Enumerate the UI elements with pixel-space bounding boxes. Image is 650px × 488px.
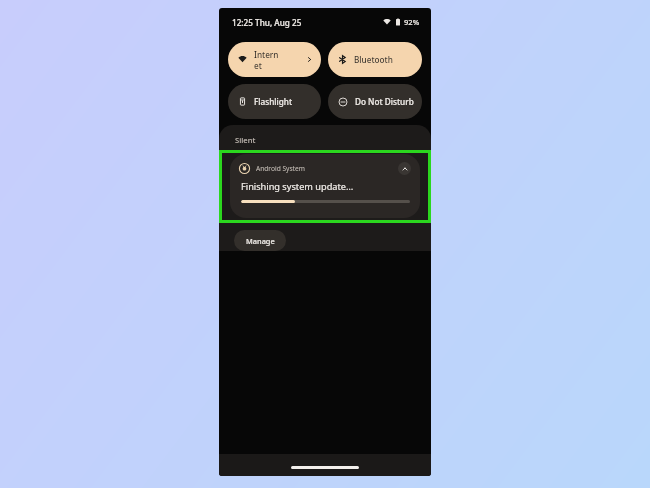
staticText: Silent bbox=[235, 135, 256, 145]
staticText: Finishing system update… bbox=[241, 180, 354, 193]
button[interactable]: Bluetooth bbox=[328, 42, 422, 77]
staticText: Manage bbox=[246, 236, 275, 246]
button[interactable]: Collapse notification bbox=[398, 162, 411, 175]
staticText: Do Not Disturb bbox=[355, 96, 414, 107]
staticText: Internet bbox=[254, 49, 280, 71]
button[interactable]: Do Not Disturb bbox=[328, 84, 422, 119]
staticText: Flashlight bbox=[254, 96, 293, 107]
button[interactable]: Internet bbox=[228, 42, 321, 77]
button[interactable]: Android System bbox=[230, 154, 420, 218]
button[interactable]: Manage bbox=[234, 230, 286, 251]
staticText: 12:25 Thu, Aug 25 bbox=[232, 17, 302, 28]
staticText: Bluetooth bbox=[354, 54, 393, 65]
staticText: Android System bbox=[256, 164, 305, 173]
staticText: 92% bbox=[404, 17, 420, 27]
button[interactable]: Flashlight bbox=[228, 84, 321, 119]
